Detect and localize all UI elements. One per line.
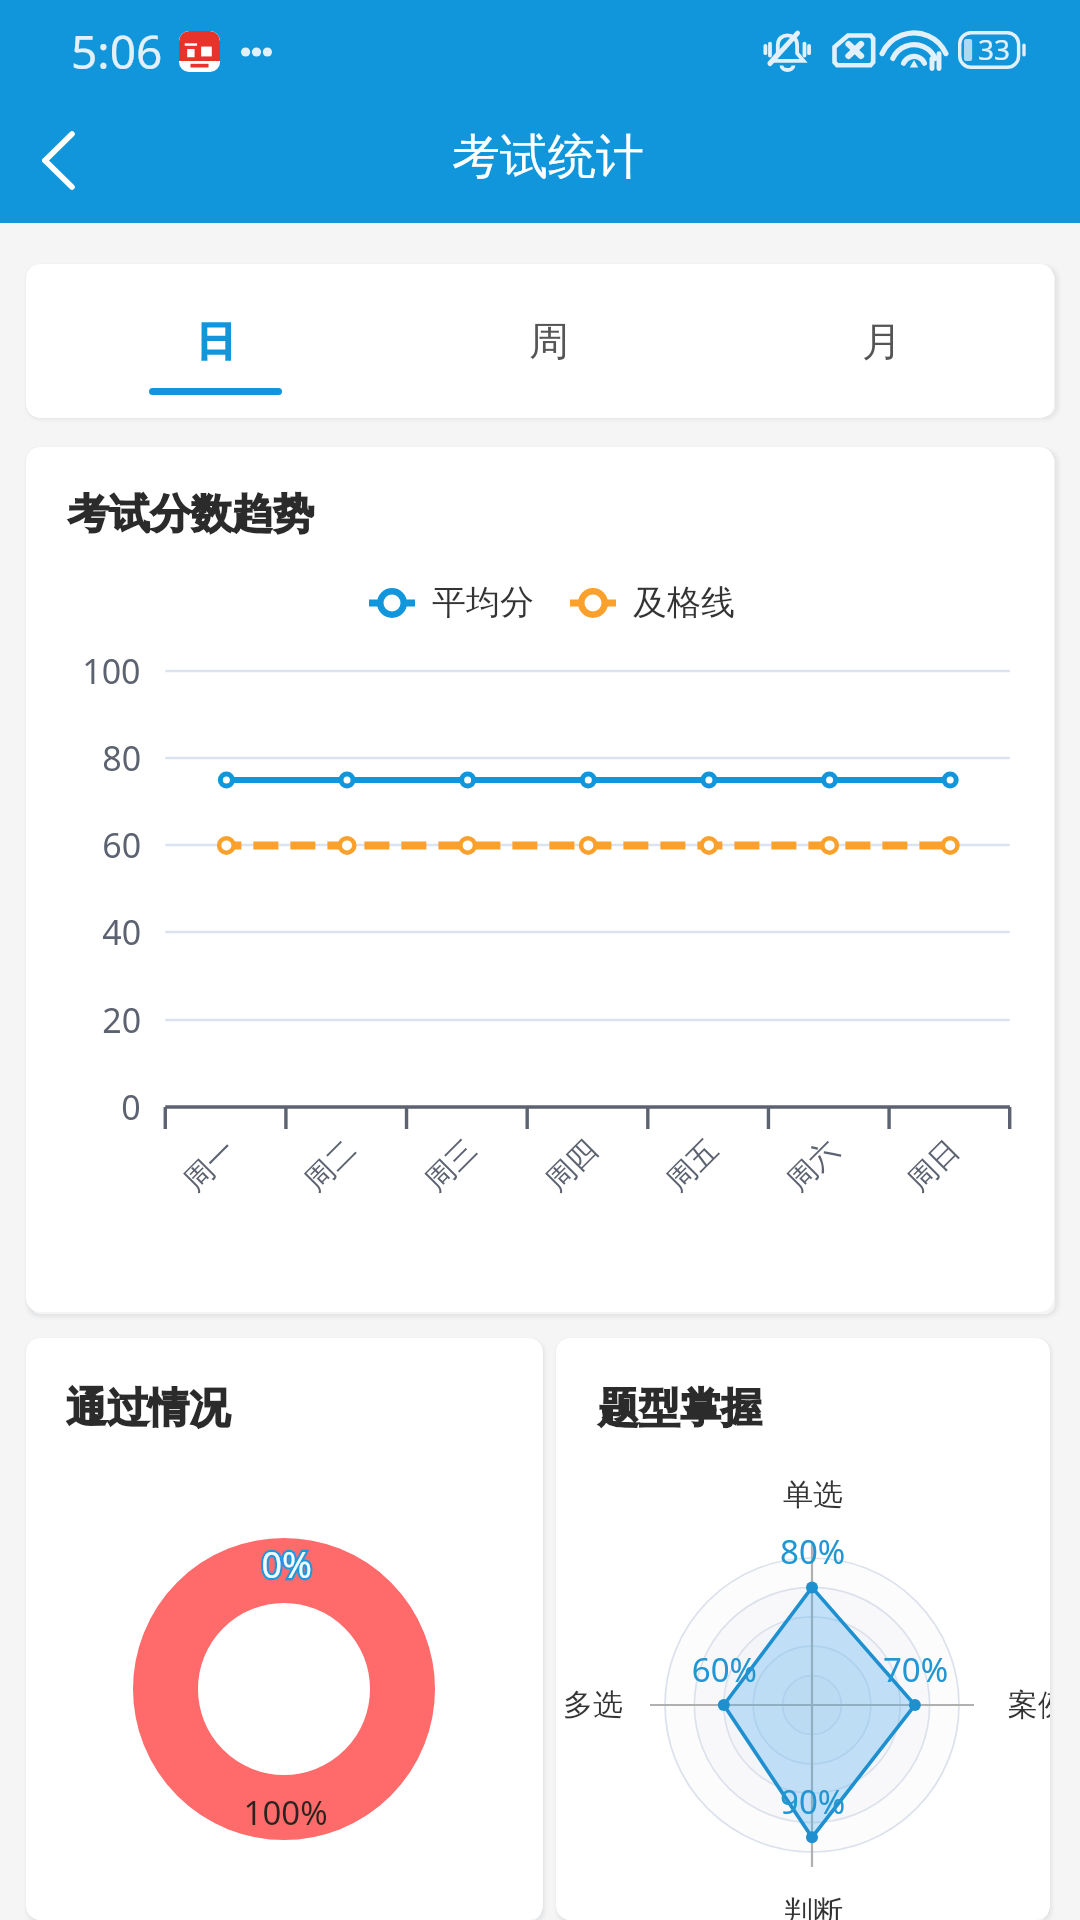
staticText: 考试分数趋势 <box>68 489 314 541</box>
staticText: 日 <box>196 316 236 366</box>
staticText: 周 <box>529 316 569 366</box>
button[interactable]: 月 <box>715 264 1048 418</box>
staticText: 平均分 <box>432 581 534 624</box>
button[interactable]: 周 <box>382 264 715 418</box>
staticText: 题型掌握 <box>598 1383 762 1435</box>
button[interactable]: 日 <box>49 264 382 418</box>
staticText: 5:06 <box>71 20 163 83</box>
staticText: 通过情况 <box>66 1383 230 1435</box>
button[interactable]: Back <box>7 110 107 210</box>
staticText: 33 <box>978 30 1011 68</box>
staticText: 考试统计 <box>452 127 644 187</box>
staticText: 及格线 <box>633 581 735 624</box>
staticText: 月 <box>862 316 902 366</box>
